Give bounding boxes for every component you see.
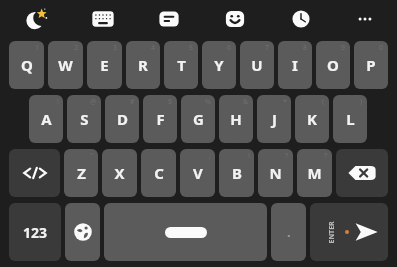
button[interactable]: Clipboard <box>150 0 188 38</box>
staticText: X <box>114 163 125 183</box>
staticText: 1 <box>35 43 40 53</box>
button[interactable]: 8 <box>278 41 312 89</box>
button[interactable]: * <box>257 95 291 143</box>
staticText: B <box>232 163 242 183</box>
staticText: C <box>154 163 164 183</box>
button[interactable]: 4 <box>126 41 160 89</box>
staticText: ENTER <box>326 220 336 243</box>
staticText: 0 <box>379 43 384 53</box>
staticText: ? <box>285 151 289 161</box>
button[interactable]: ! <box>29 95 63 143</box>
staticText: S <box>80 109 89 129</box>
staticText: K <box>307 109 317 129</box>
staticText: @ <box>90 97 97 107</box>
staticText: Q <box>21 55 33 75</box>
button[interactable]: ? <box>297 149 332 197</box>
staticText: R <box>138 55 148 75</box>
staticText: F <box>156 109 165 129</box>
staticText: D <box>117 109 128 129</box>
button[interactable]: @ <box>67 95 101 143</box>
button[interactable]: 2 <box>48 41 83 89</box>
staticText: 5 <box>189 43 194 53</box>
staticText: 4 <box>151 43 156 53</box>
button[interactable]: ) <box>333 95 367 143</box>
button[interactable]: Recent <box>282 0 320 38</box>
staticText: M <box>307 163 322 183</box>
staticText: G <box>193 109 204 129</box>
button[interactable]: ; <box>180 149 215 197</box>
button[interactable]: " <box>64 149 98 197</box>
staticText: W <box>58 55 73 75</box>
staticText: O <box>327 55 339 75</box>
button[interactable]: Change language <box>65 203 100 261</box>
staticText: H <box>230 109 242 129</box>
button[interactable]: # <box>105 95 139 143</box>
staticText: Y <box>214 55 224 75</box>
button[interactable]: . <box>271 203 306 261</box>
button[interactable]: & <box>219 95 253 143</box>
button[interactable]: 123 <box>9 203 61 261</box>
staticText: 7 <box>265 43 270 53</box>
staticText: V <box>193 163 203 183</box>
button[interactable]: 3 <box>87 41 122 89</box>
button[interactable]: ' <box>102 149 137 197</box>
button[interactable]: Night mode <box>18 0 56 38</box>
button[interactable]: Symbols <box>9 149 60 197</box>
staticText: J <box>272 109 277 129</box>
button[interactable]: 9 <box>316 41 350 89</box>
staticText: ) <box>360 97 363 107</box>
button[interactable]: ! <box>219 149 254 197</box>
button[interactable]: 7 <box>240 41 274 89</box>
button[interactable]: More options <box>346 0 384 38</box>
staticText: $ <box>168 97 173 107</box>
staticText: ; <box>209 151 211 161</box>
staticText: L <box>346 109 355 129</box>
button[interactable]: $ <box>143 95 177 143</box>
button[interactable]: % <box>181 95 215 143</box>
button[interactable]: 0 <box>354 41 388 89</box>
staticText: A <box>41 109 52 129</box>
staticText: % <box>205 97 211 107</box>
staticText: & <box>243 97 249 107</box>
staticText: 9 <box>341 43 346 53</box>
staticText: ? <box>324 151 328 161</box>
staticText: 6 <box>227 43 232 53</box>
staticText: 8 <box>303 43 308 53</box>
staticText: * <box>283 97 287 107</box>
staticText: 2 <box>74 43 79 53</box>
staticText: # <box>130 97 135 107</box>
staticText: . <box>287 223 291 241</box>
staticText: 3 <box>113 43 118 53</box>
staticText: Z <box>77 163 86 183</box>
button[interactable]: Keyboard <box>84 0 122 38</box>
staticText: U <box>251 55 263 75</box>
button[interactable]: : <box>141 149 176 197</box>
button[interactable]: Enter <box>310 203 388 261</box>
button[interactable]: ? <box>258 149 293 197</box>
staticText: 123 <box>23 223 48 242</box>
button[interactable]: 1 <box>9 41 44 89</box>
button[interactable]: 5 <box>164 41 198 89</box>
staticText: N <box>269 163 282 183</box>
button[interactable]: 6 <box>202 41 236 89</box>
staticText: T <box>177 55 186 75</box>
button[interactable]: Emoji <box>216 0 254 38</box>
button[interactable]: ( <box>295 95 329 143</box>
staticText: I <box>292 55 298 75</box>
staticText: ( <box>322 97 325 107</box>
button[interactable]: Space <box>104 203 267 261</box>
button[interactable]: Backspace <box>336 149 388 197</box>
staticText: E <box>100 55 109 75</box>
staticText: P <box>366 55 376 75</box>
